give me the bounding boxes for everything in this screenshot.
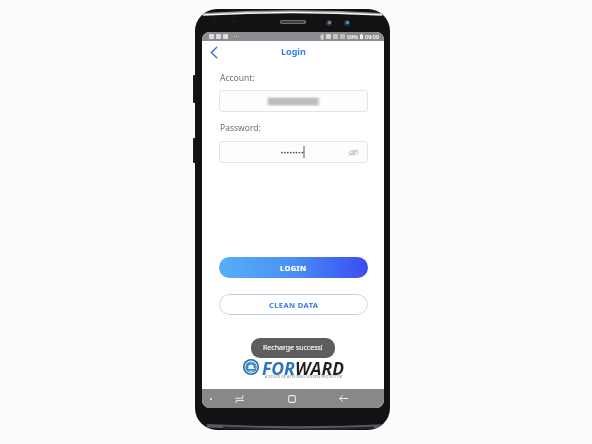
- staticText: A STOCK OF APPLYING SCREEN PROTECTOR: [265, 374, 343, 379]
- button[interactable]: Home: [281, 389, 302, 408]
- button[interactable]: LOGIN: [219, 257, 368, 278]
- staticText: FOR: [262, 356, 295, 380]
- staticText: Login: [281, 45, 306, 57]
- button[interactable]: Back: [206, 44, 222, 60]
- staticText: CLEAN DATA: [269, 300, 319, 310]
- button[interactable]: [219, 90, 368, 112]
- staticText: 99%: [347, 33, 358, 40]
- button[interactable]: Show password: [219, 141, 368, 163]
- staticText: LOGIN: [280, 263, 307, 273]
- button[interactable]: Show password: [347, 146, 360, 159]
- staticText: Account:: [220, 72, 255, 84]
- button[interactable]: CLEAN DATA: [219, 294, 368, 315]
- staticText: Password:: [220, 122, 261, 134]
- button[interactable]: Recent apps: [229, 389, 250, 408]
- button[interactable]: Back: [333, 389, 354, 408]
- staticText: Recharge success!: [263, 343, 323, 353]
- staticText: 09:09: [365, 33, 380, 40]
- staticText: WARD: [295, 356, 345, 380]
